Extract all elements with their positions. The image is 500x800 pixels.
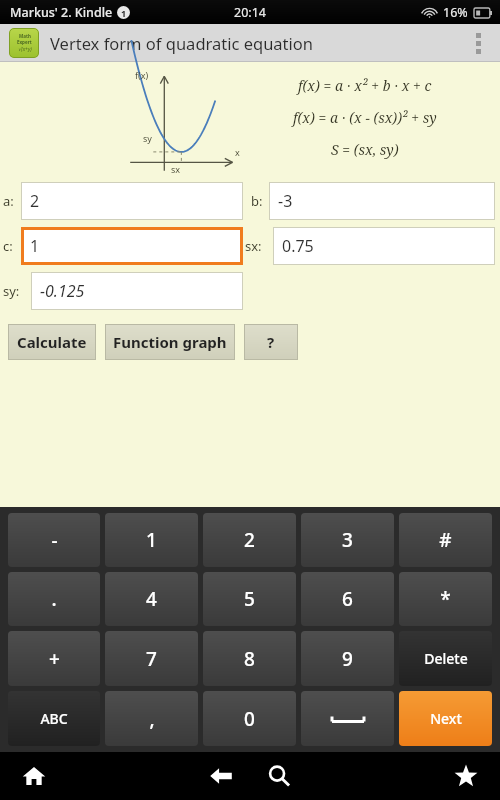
button[interactable]: 8 [203,631,296,686]
staticText: x [235,146,240,158]
staticText: * [440,586,451,612]
staticText: 4 [146,586,157,612]
button[interactable]: Search [259,756,299,796]
staticText: 0.75 [282,235,314,257]
button[interactable]: Back [201,756,241,796]
staticText: c: [3,237,13,255]
button[interactable]: - [8,513,100,567]
staticText: √(x+y) [18,46,32,53]
staticText: ABC [40,709,68,728]
staticText: 6 [342,586,353,612]
button[interactable]: Favorites [446,756,486,796]
staticText: f(x) = a · x² + b · x + c [298,76,432,95]
staticText: b: [251,192,263,210]
button[interactable]: Next [399,691,492,746]
staticText: Vertex form of quadratic equation [50,32,313,54]
staticText: - [51,527,58,553]
staticText: 7 [146,646,157,672]
button[interactable]: -0.125 [31,272,243,310]
button[interactable]: # [399,513,492,567]
staticText: 1 [121,7,127,19]
button[interactable]: Delete [399,631,492,686]
staticText: 16% [443,4,468,21]
staticText: 5 [244,586,255,612]
button[interactable]: 1 [105,513,198,567]
button[interactable]: 0.75 [273,227,495,265]
staticText: Expert [17,39,32,45]
button[interactable]: -3 [269,182,495,220]
staticText: # [439,527,452,553]
staticText: Delete [424,649,468,668]
staticText: + [49,646,60,672]
staticText: ? [267,332,275,352]
staticText: Next [430,709,462,728]
button[interactable]: 1 [21,227,243,265]
staticText: 0 [244,706,255,732]
staticText: Function graph [113,332,227,352]
button[interactable]: . [8,572,100,626]
staticText: -3 [278,190,293,212]
button[interactable]: 5 [203,572,296,626]
staticText: S = (sx, sy) [331,140,399,159]
staticText: 8 [244,646,255,672]
staticText: f(x) [135,69,149,81]
button[interactable]: 3 [301,513,394,567]
button[interactable]: Home [14,756,54,796]
button[interactable]: 2 [203,513,296,567]
staticText: 1 [30,235,40,257]
button[interactable]: More options [465,24,491,62]
staticText: 3 [342,527,353,553]
button[interactable]: Space [301,691,394,746]
button[interactable]: 6 [301,572,394,626]
button[interactable]: 0 [203,691,296,746]
button[interactable]: 2 [21,182,243,220]
button[interactable]: ? [244,324,298,360]
staticText: 9 [342,646,353,672]
button[interactable]: 9 [301,631,394,686]
staticText: 1 [146,527,157,553]
staticText: f(x) = a · (x − (sx))² + sy [293,108,437,127]
button[interactable]: , [105,691,198,746]
button[interactable]: ABC [8,691,100,746]
staticText: sy: [3,282,20,300]
staticText: 2 [30,190,40,212]
button[interactable]: 7 [105,631,198,686]
staticText: a: [3,192,14,210]
staticText: , [149,706,155,732]
staticText: Calculate [17,332,87,352]
staticText: sx: [245,237,262,255]
button[interactable]: 4 [105,572,198,626]
button[interactable]: * [399,572,492,626]
button[interactable]: + [8,631,100,686]
staticText: Markus' 2. Kindle [10,4,113,21]
button[interactable]: Calculate [8,324,96,360]
staticText: Math [19,33,31,39]
staticText: 2 [244,527,255,553]
staticText: -0.125 [40,280,85,302]
staticText: . [51,586,57,612]
staticText: 20:14 [234,4,266,21]
button[interactable]: Function graph [105,324,235,360]
staticText: sx [171,163,181,175]
staticText: sy [143,132,152,144]
